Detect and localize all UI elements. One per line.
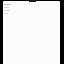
button[interactable] [3, 1, 60, 64]
